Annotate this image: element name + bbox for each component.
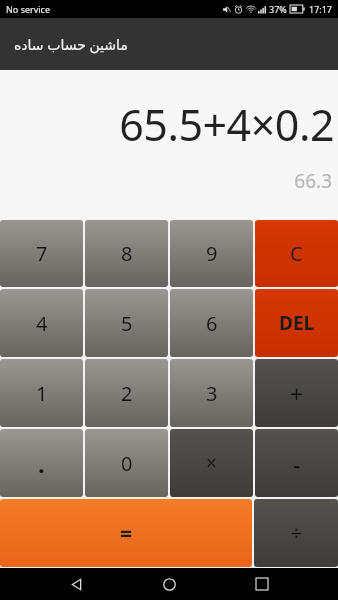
button[interactable]: Home <box>152 568 186 600</box>
staticText: 7 <box>36 240 48 267</box>
staticText: 0 <box>121 450 133 477</box>
button[interactable]: 6 <box>170 289 253 357</box>
button[interactable]: = <box>0 499 252 567</box>
staticText: 65.5+4×0.2 <box>119 95 334 154</box>
button[interactable]: 2 <box>85 359 168 427</box>
staticText: 2 <box>121 380 133 407</box>
button[interactable]: × <box>170 429 253 497</box>
button[interactable]: 4 <box>0 289 83 357</box>
staticText: C <box>290 240 303 267</box>
staticText: DEL <box>279 310 315 336</box>
staticText: No service <box>6 3 51 15</box>
button[interactable]: C <box>255 220 338 287</box>
staticText: = <box>120 519 133 548</box>
button[interactable]: + <box>255 359 338 427</box>
staticText: 6 <box>206 310 218 337</box>
staticText: 1 <box>36 380 48 407</box>
button[interactable]: 1 <box>0 359 83 427</box>
staticText: 66.3 <box>294 168 332 194</box>
staticText: 9 <box>206 240 218 267</box>
button[interactable]: 9 <box>170 220 253 287</box>
staticText: ماشین حساب ساده <box>14 35 128 54</box>
staticText: 5 <box>121 310 133 337</box>
staticText: 8 <box>121 240 133 267</box>
staticText: . <box>38 447 45 480</box>
button[interactable]: 3 <box>170 359 253 427</box>
button[interactable]: 5 <box>85 289 168 357</box>
staticText: 3 <box>206 380 218 407</box>
button[interactable]: . <box>0 429 83 497</box>
button[interactable]: ÷ <box>254 499 338 567</box>
button[interactable]: - <box>255 429 338 497</box>
staticText: 17:17 <box>309 3 333 15</box>
button[interactable]: Recent apps <box>245 568 279 600</box>
staticText: 37% <box>269 3 287 15</box>
button[interactable]: DEL <box>255 289 338 357</box>
button[interactable]: 7 <box>0 220 83 287</box>
button[interactable]: Back <box>59 568 93 600</box>
button[interactable]: 0 <box>85 429 168 497</box>
staticText: + <box>290 378 304 409</box>
staticText: ÷ <box>291 520 302 546</box>
button[interactable]: 8 <box>85 220 168 287</box>
staticText: 4 <box>36 310 48 337</box>
staticText: - <box>293 448 301 479</box>
staticText: × <box>206 450 217 476</box>
